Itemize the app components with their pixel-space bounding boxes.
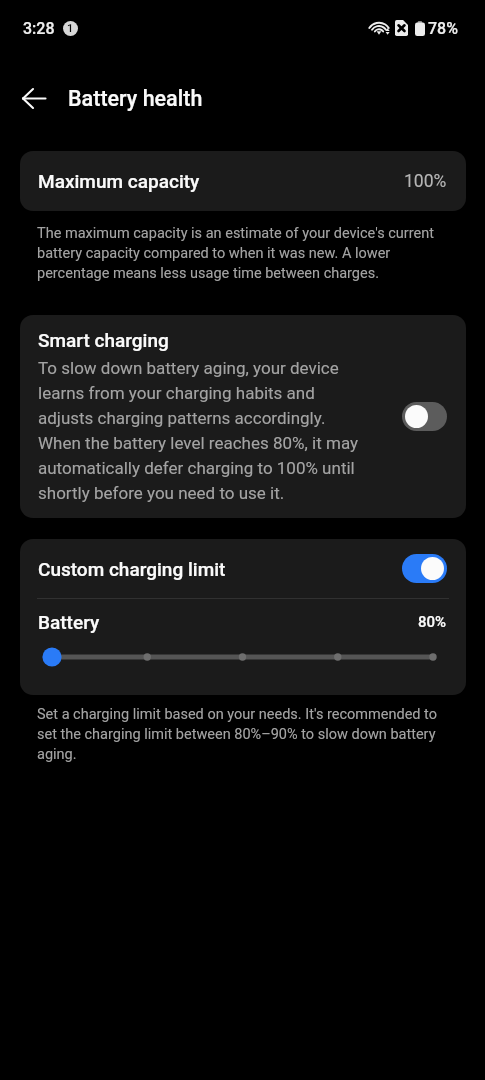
staticText: 78%: [428, 19, 458, 38]
staticText: Battery: [38, 611, 100, 633]
button[interactable]: Switch off: [402, 402, 447, 431]
staticText: 80%: [418, 613, 447, 631]
button[interactable]: Back: [0, 72, 68, 124]
staticText: Set a charging limit based on your needs…: [37, 703, 455, 763]
staticText: Custom charging limit: [38, 558, 226, 580]
staticText: To slow down battery aging, your device …: [38, 354, 364, 504]
staticText: Maximum capacity: [38, 170, 200, 192]
staticText: Smart charging: [38, 329, 169, 351]
button[interactable]: Switch on: [402, 554, 447, 583]
button[interactable]: Charging limit slider: [20, 633, 466, 695]
staticText: 3:28: [23, 19, 55, 38]
staticText: Battery health: [68, 86, 203, 111]
staticText: 100%: [404, 171, 447, 192]
staticText: 1: [67, 22, 74, 35]
staticText: The maximum capacity is an estimate of y…: [37, 222, 455, 282]
